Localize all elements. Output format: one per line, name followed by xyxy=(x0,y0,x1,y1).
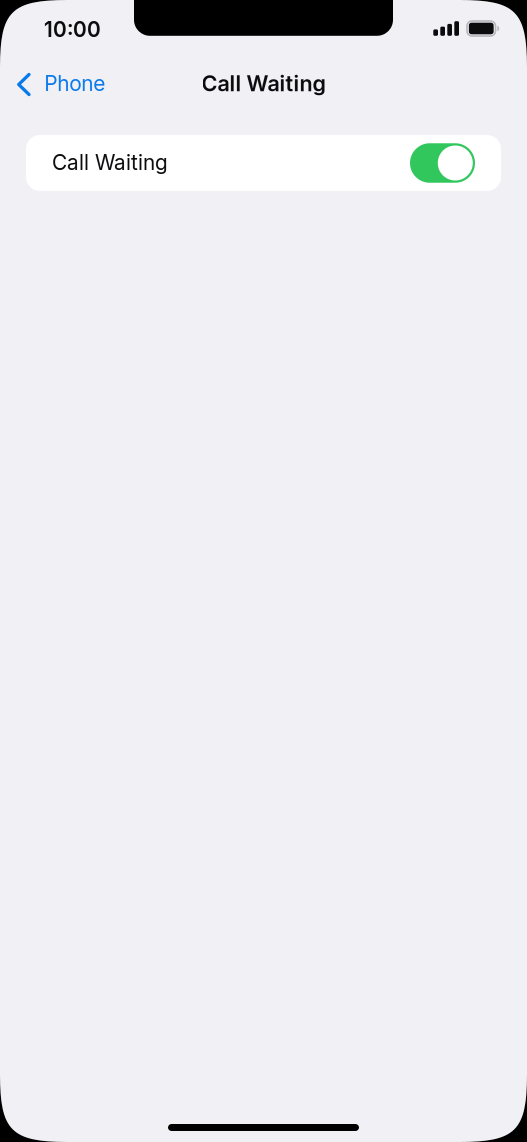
staticText: Call Waiting xyxy=(201,70,325,96)
staticText: 10:00 xyxy=(44,17,101,42)
staticText: Phone xyxy=(44,71,105,96)
button[interactable]: Call Waiting xyxy=(26,135,501,191)
button[interactable]: Phone xyxy=(0,63,117,106)
staticText: Call Waiting xyxy=(52,150,168,175)
